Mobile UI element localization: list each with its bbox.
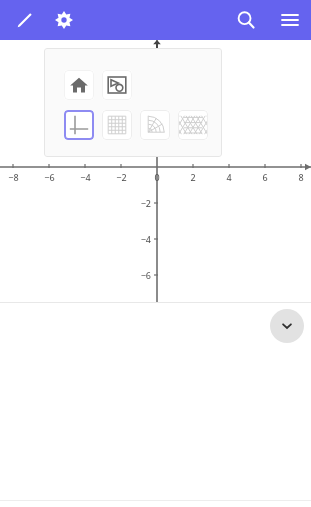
button[interactable]: Grid option <box>102 110 132 140</box>
staticText: 6 <box>262 171 268 183</box>
staticText: 2 <box>190 171 196 183</box>
button[interactable]: Grid option <box>140 110 170 140</box>
staticText: −4 <box>80 171 91 183</box>
button[interactable]: Collapse <box>270 309 304 343</box>
staticText: 0 <box>154 171 160 183</box>
button[interactable]: Settings <box>44 0 84 40</box>
staticText: 8 <box>298 171 304 183</box>
staticText: −6 <box>140 269 151 281</box>
staticText: −2 <box>140 197 151 209</box>
button[interactable]: Grid option <box>178 110 208 140</box>
button[interactable]: Grid option <box>64 70 94 100</box>
staticText: −8 <box>8 171 19 183</box>
staticText: −4 <box>140 233 151 245</box>
staticText: −6 <box>44 171 55 183</box>
button[interactable]: Grid option <box>102 70 132 100</box>
button[interactable]: Menu <box>270 0 310 40</box>
button[interactable]: Grid option <box>64 110 94 140</box>
staticText: 4 <box>226 171 232 183</box>
button[interactable]: Edit <box>4 0 44 40</box>
staticText: −2 <box>116 171 127 183</box>
button[interactable]: Search <box>226 0 266 40</box>
